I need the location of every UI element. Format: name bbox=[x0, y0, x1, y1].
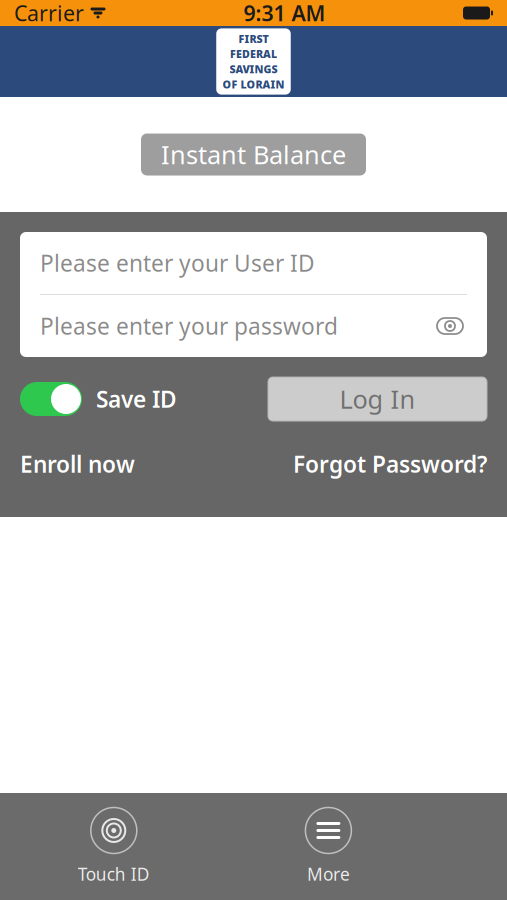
staticText: Log In bbox=[339, 382, 415, 416]
button[interactable]: More bbox=[305, 807, 351, 885]
staticText: OF LORAIN bbox=[222, 77, 284, 91]
staticText: Instant Balance bbox=[161, 138, 346, 171]
staticText: More bbox=[307, 862, 350, 885]
staticText: Save ID bbox=[96, 384, 177, 414]
staticText: Carrier bbox=[14, 0, 84, 27]
button[interactable]: Save ID bbox=[20, 382, 177, 416]
button[interactable]: Enroll now bbox=[20, 449, 135, 479]
staticText: SAVINGS bbox=[229, 62, 277, 76]
staticText: Touch ID bbox=[78, 862, 150, 885]
button[interactable]: Touch ID bbox=[78, 807, 150, 885]
staticText: FIRST bbox=[238, 32, 268, 46]
button[interactable]: Instant Balance bbox=[141, 133, 366, 175]
button[interactable]: Log In bbox=[268, 377, 487, 421]
staticText: Enroll now bbox=[20, 449, 135, 479]
staticText: 9:31 AM bbox=[243, 0, 325, 27]
staticText: Forgot Password? bbox=[293, 449, 487, 479]
staticText: Please enter your password bbox=[40, 311, 338, 341]
staticText: Please enter your User ID bbox=[40, 248, 315, 278]
button[interactable]: Show password bbox=[433, 309, 467, 343]
staticText: FEDERAL bbox=[230, 47, 277, 61]
button[interactable]: Forgot Password? bbox=[293, 449, 487, 479]
